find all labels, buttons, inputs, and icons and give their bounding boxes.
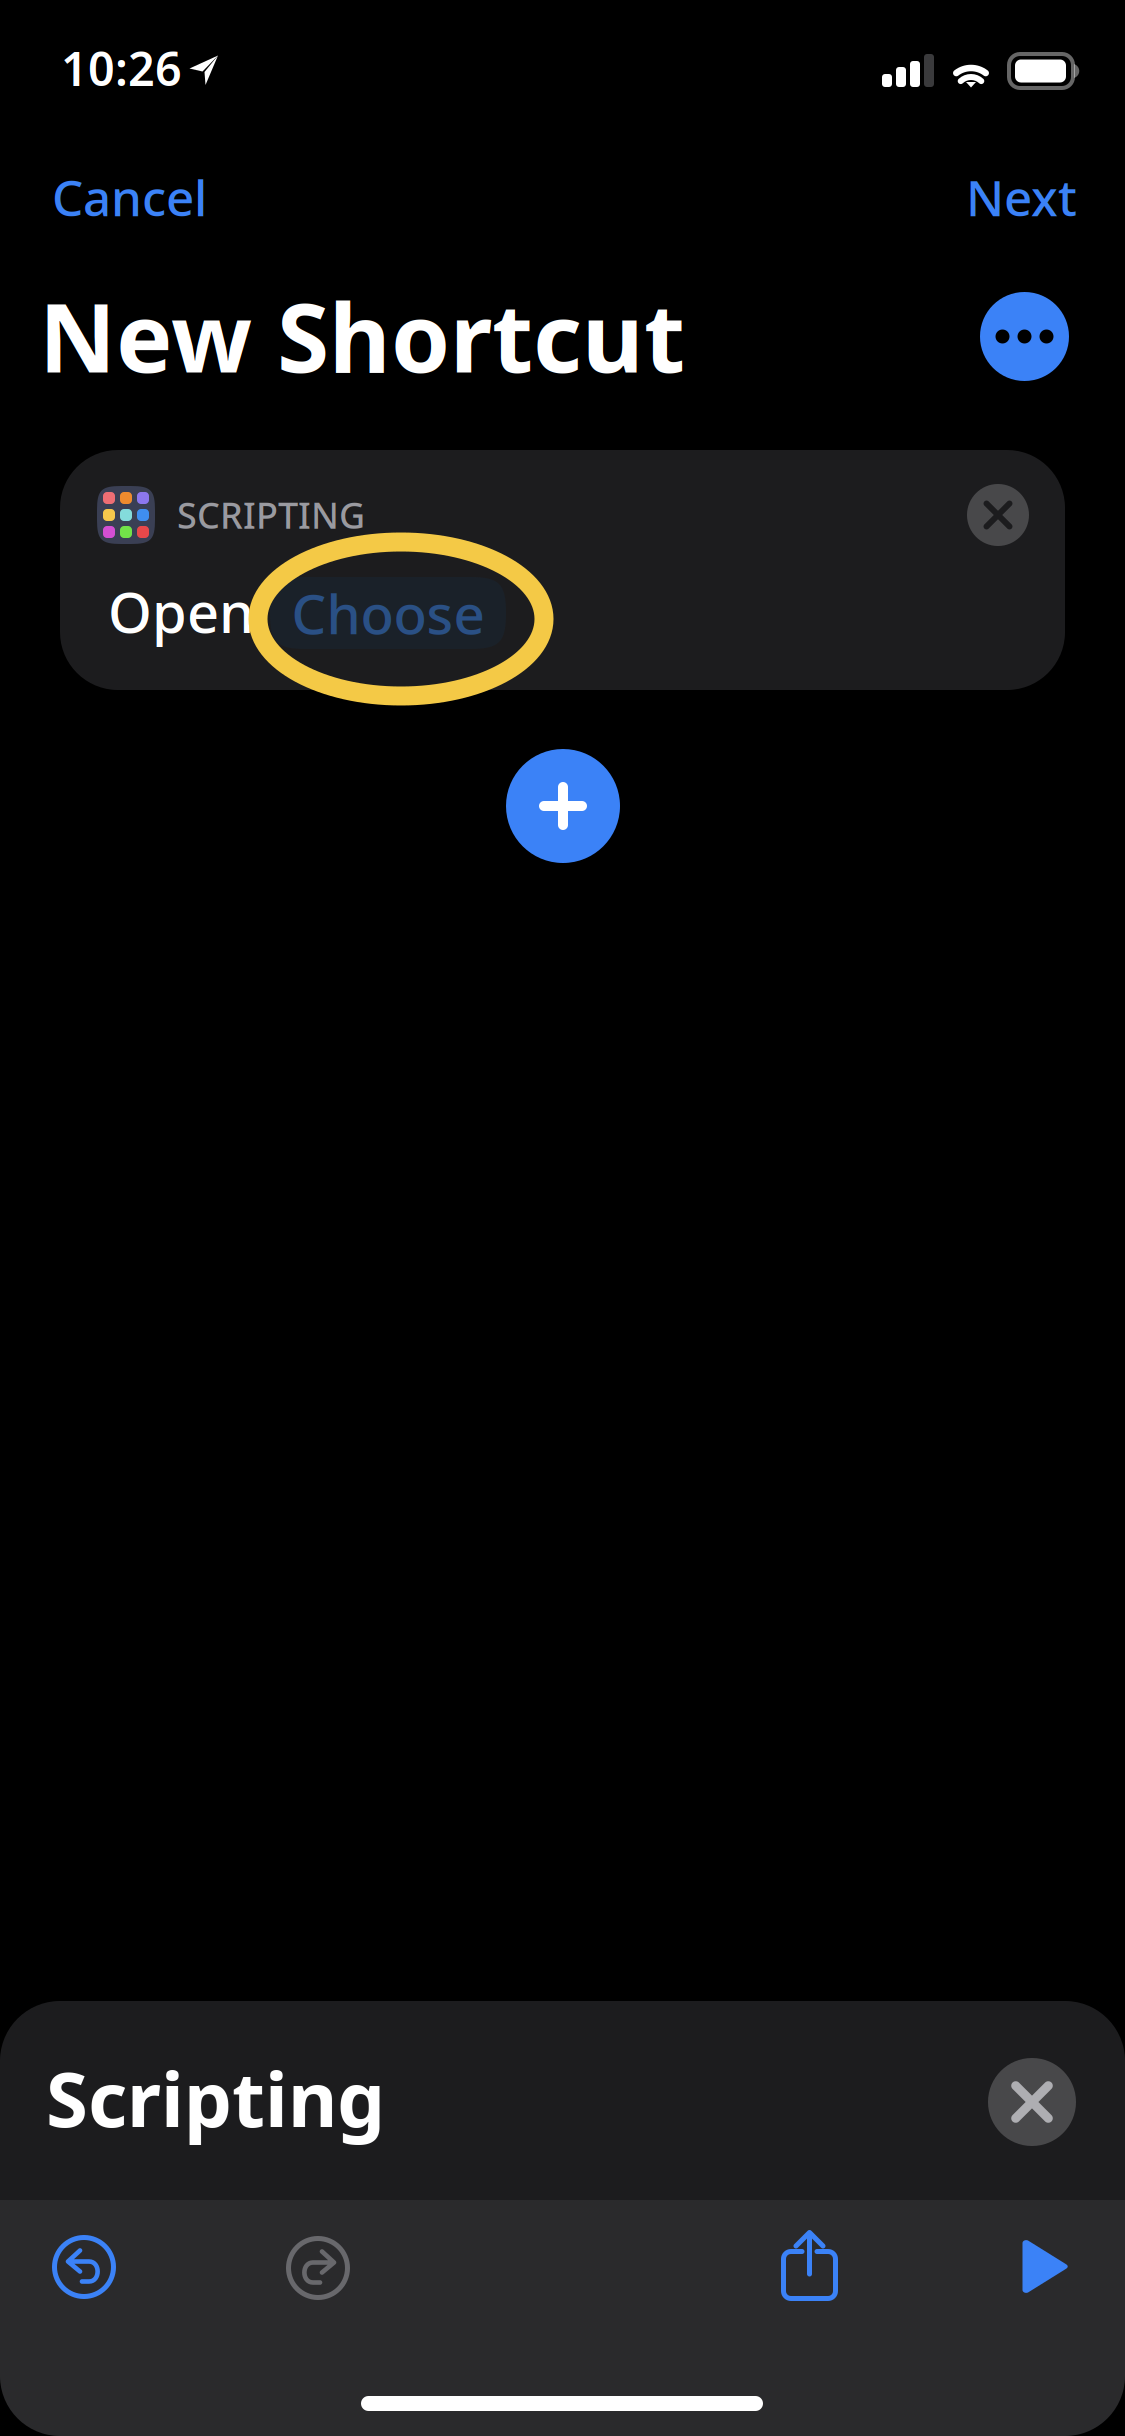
button[interactable]: Undo (52, 2235, 116, 2299)
staticText: Next (966, 164, 1077, 230)
button[interactable]: Share (781, 2229, 838, 2301)
button[interactable]: Add action (506, 749, 620, 863)
staticText: New Shortcut (39, 273, 685, 399)
button[interactable]: Run shortcut (1021, 2239, 1069, 2294)
staticText: Scripting (46, 2047, 385, 2148)
staticText: Choose (291, 577, 484, 649)
button[interactable]: Redo (286, 2236, 350, 2300)
staticText: Open (108, 574, 254, 648)
button[interactable]: More options (980, 292, 1069, 381)
button[interactable]: Choose (270, 577, 506, 649)
button[interactable]: Close (988, 2058, 1076, 2146)
staticText: SCRIPTING (177, 491, 365, 539)
button[interactable]: Next (926, 146, 1077, 248)
staticText: Cancel (52, 164, 207, 230)
button[interactable]: Cancel (52, 146, 247, 248)
staticText: 10:26 (61, 37, 182, 99)
button[interactable]: SCRIPTING (60, 450, 1065, 690)
button[interactable]: Remove action (967, 484, 1029, 546)
